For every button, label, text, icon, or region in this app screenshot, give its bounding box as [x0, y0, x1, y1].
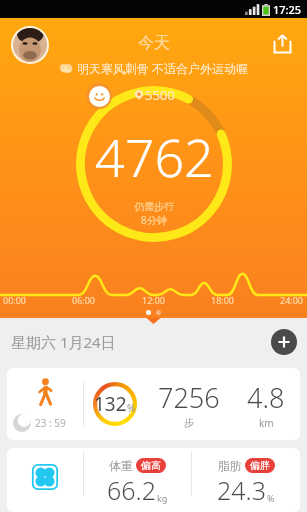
staticText: % [127, 401, 136, 415]
staticText: 今天 [138, 33, 170, 53]
staticText: 明天寒风刺骨 不适合户外运动喔 [77, 60, 249, 76]
staticText: 8分钟 [141, 213, 167, 227]
staticText: 23 : 59 [35, 416, 66, 430]
staticText: 5500 [145, 86, 175, 104]
staticText: 体重 [109, 458, 133, 473]
button[interactable]: 23 : 59 [7, 368, 300, 440]
staticText: 17:25 [273, 2, 302, 17]
staticText: 仍需步行 [134, 200, 174, 213]
staticText: 4762 [95, 121, 214, 192]
staticText: 06:00 [72, 294, 96, 306]
staticText: 脂肪 [218, 458, 242, 473]
staticText: 星期六 1月24日 [11, 332, 116, 352]
staticText: 00:00 [3, 294, 27, 306]
staticText: 12:00 [142, 294, 166, 306]
staticText: 4.8 [247, 379, 285, 416]
staticText: 偏胖 [250, 459, 270, 472]
staticText: 24:00 [280, 294, 304, 306]
button[interactable]: Add [271, 329, 297, 355]
staticText: 18:00 [211, 294, 235, 306]
staticText: 7256 [158, 379, 220, 416]
staticText: % [267, 492, 275, 504]
staticText: 偏高 [141, 459, 161, 472]
button[interactable]: 体重 [7, 448, 300, 512]
button[interactable]: Profile [11, 26, 49, 64]
staticText: kg [157, 492, 168, 504]
staticText: 24.3 [217, 473, 266, 507]
staticText: 66.2 [107, 473, 156, 507]
staticText: 步 [184, 416, 194, 429]
button[interactable]: Share [265, 26, 299, 60]
staticText: 132 [94, 391, 127, 417]
staticText: km [259, 416, 274, 430]
